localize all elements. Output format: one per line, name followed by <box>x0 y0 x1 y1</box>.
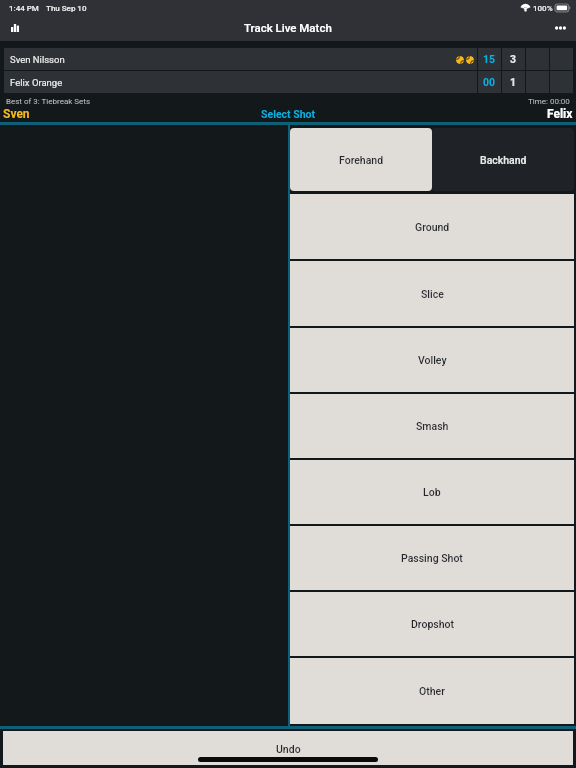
button[interactable]: Volley <box>290 328 574 392</box>
staticText: Track Live Match <box>244 21 332 34</box>
button[interactable]: Statistics <box>6 19 24 37</box>
button[interactable]: Dropshot <box>290 592 574 656</box>
button[interactable]: Undo <box>3 731 573 765</box>
staticText: Slice <box>421 288 444 300</box>
button[interactable]: 15 <box>478 48 501 70</box>
staticText: Felix Orange <box>10 77 63 88</box>
staticText: Undo <box>276 743 301 755</box>
staticText: Best of 3: Tiebreak Sets <box>6 97 91 106</box>
button[interactable]: More options <box>551 19 569 37</box>
staticText: Forehand <box>339 154 384 166</box>
staticText: 1:44 PM <box>9 4 39 13</box>
button[interactable]: Backhand <box>432 128 574 191</box>
button[interactable]: Sven <box>0 106 34 122</box>
staticText: Passing Shot <box>401 552 463 564</box>
staticText: 00 <box>483 76 496 88</box>
staticText: Sven Nilsson <box>10 54 65 65</box>
staticText: Dropshot <box>411 618 454 630</box>
staticText: Sven <box>3 107 30 121</box>
staticText: 100% <box>533 4 553 13</box>
staticText: Smash <box>416 420 449 432</box>
button[interactable]: Slice <box>290 261 574 326</box>
staticText: Other <box>419 685 445 697</box>
staticText: Time: 00:00 <box>528 97 570 106</box>
staticText: Backhand <box>480 154 527 166</box>
staticText: Select Shot <box>261 108 316 120</box>
staticText: Ground <box>415 221 450 233</box>
staticText: Volley <box>418 354 447 366</box>
staticText: Felix <box>547 107 573 121</box>
button[interactable]: Lob <box>290 460 574 524</box>
staticText: 1 <box>510 76 517 88</box>
button[interactable]: Passing Shot <box>290 526 574 590</box>
staticText: Lob <box>423 486 441 498</box>
button[interactable]: Felix Orange <box>4 71 477 93</box>
button[interactable]: Felix <box>543 106 576 122</box>
button[interactable]: Sven Nilsson <box>4 48 477 70</box>
button[interactable]: 00 <box>478 71 501 93</box>
button[interactable]: Smash <box>290 394 574 458</box>
button[interactable]: 3 <box>502 48 525 70</box>
button[interactable]: Forehand <box>290 128 432 191</box>
staticText: 3 <box>510 53 517 65</box>
button[interactable]: 1 <box>502 71 525 93</box>
staticText: Thu Sep 10 <box>46 4 87 13</box>
button[interactable]: Other <box>290 658 574 724</box>
staticText: 15 <box>483 53 496 65</box>
button[interactable]: Ground <box>290 194 574 259</box>
button[interactable]: Select Shot <box>257 106 320 122</box>
